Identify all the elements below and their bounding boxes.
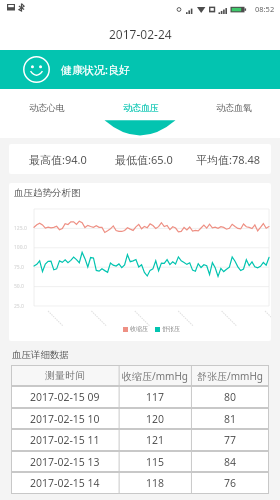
- staticText: 动态血压: [123, 102, 159, 113]
- staticText: 25.0: [14, 303, 24, 310]
- staticText: 收缩压: [130, 325, 148, 333]
- staticText: 08:52: [255, 4, 275, 14]
- button[interactable]: 2017-02-15 10: [11, 408, 269, 429]
- staticText: 舒张压/mmHg: [197, 369, 263, 383]
- staticText: 2017-02-15 14: [30, 476, 100, 490]
- staticText: 117: [146, 390, 165, 404]
- staticText: 76: [224, 476, 237, 490]
- staticText: 动态血氧: [216, 102, 252, 113]
- staticText: 测量时间: [45, 369, 85, 382]
- staticText: 50.0: [14, 283, 24, 290]
- button[interactable]: 2017-02-15 11: [11, 429, 269, 451]
- staticText: 2017-02-15 09: [30, 390, 100, 404]
- button[interactable]: 动态血氧: [187, 89, 280, 126]
- staticText: 75.0: [14, 264, 24, 271]
- staticText: 健康状况:良好: [61, 62, 130, 77]
- button[interactable]: 动态心电: [0, 89, 94, 126]
- button[interactable]: 2017-02-15 14: [11, 472, 269, 494]
- staticText: 最低值:65.0: [115, 152, 173, 167]
- staticText: 100.0: [14, 244, 27, 251]
- staticText: 舒张压: [162, 325, 180, 333]
- staticText: 2017-02-15 11: [30, 433, 100, 447]
- staticText: 动态心电: [29, 102, 65, 113]
- button[interactable]: 测量时间: [11, 365, 269, 386]
- button[interactable]: 2017-02-15 13: [11, 451, 269, 472]
- staticText: 血压趋势分析图: [14, 187, 81, 199]
- staticText: 收缩压/mmHg: [122, 369, 188, 383]
- button[interactable]: 动态血压: [94, 89, 187, 126]
- staticText: 118: [146, 476, 165, 490]
- staticText: 121: [146, 433, 165, 447]
- other: Health status good: [23, 56, 50, 83]
- staticText: 2017-02-24: [109, 26, 172, 42]
- button[interactable]: 2017-02-15 09: [11, 386, 269, 408]
- staticText: 115: [146, 455, 165, 469]
- staticText: 血压详细数据: [12, 349, 69, 361]
- staticText: 2017-02-15 13: [30, 455, 100, 469]
- staticText: 125.0: [14, 225, 27, 232]
- staticText: 77: [224, 433, 237, 447]
- staticText: 81: [224, 412, 237, 426]
- staticText: 平均值:78.48: [196, 152, 261, 167]
- staticText: 120: [146, 412, 165, 426]
- staticText: 最高值:94.0: [29, 152, 87, 167]
- staticText: 2017-02-15 10: [30, 412, 100, 426]
- staticText: 84: [224, 455, 237, 469]
- staticText: 80: [224, 390, 237, 404]
